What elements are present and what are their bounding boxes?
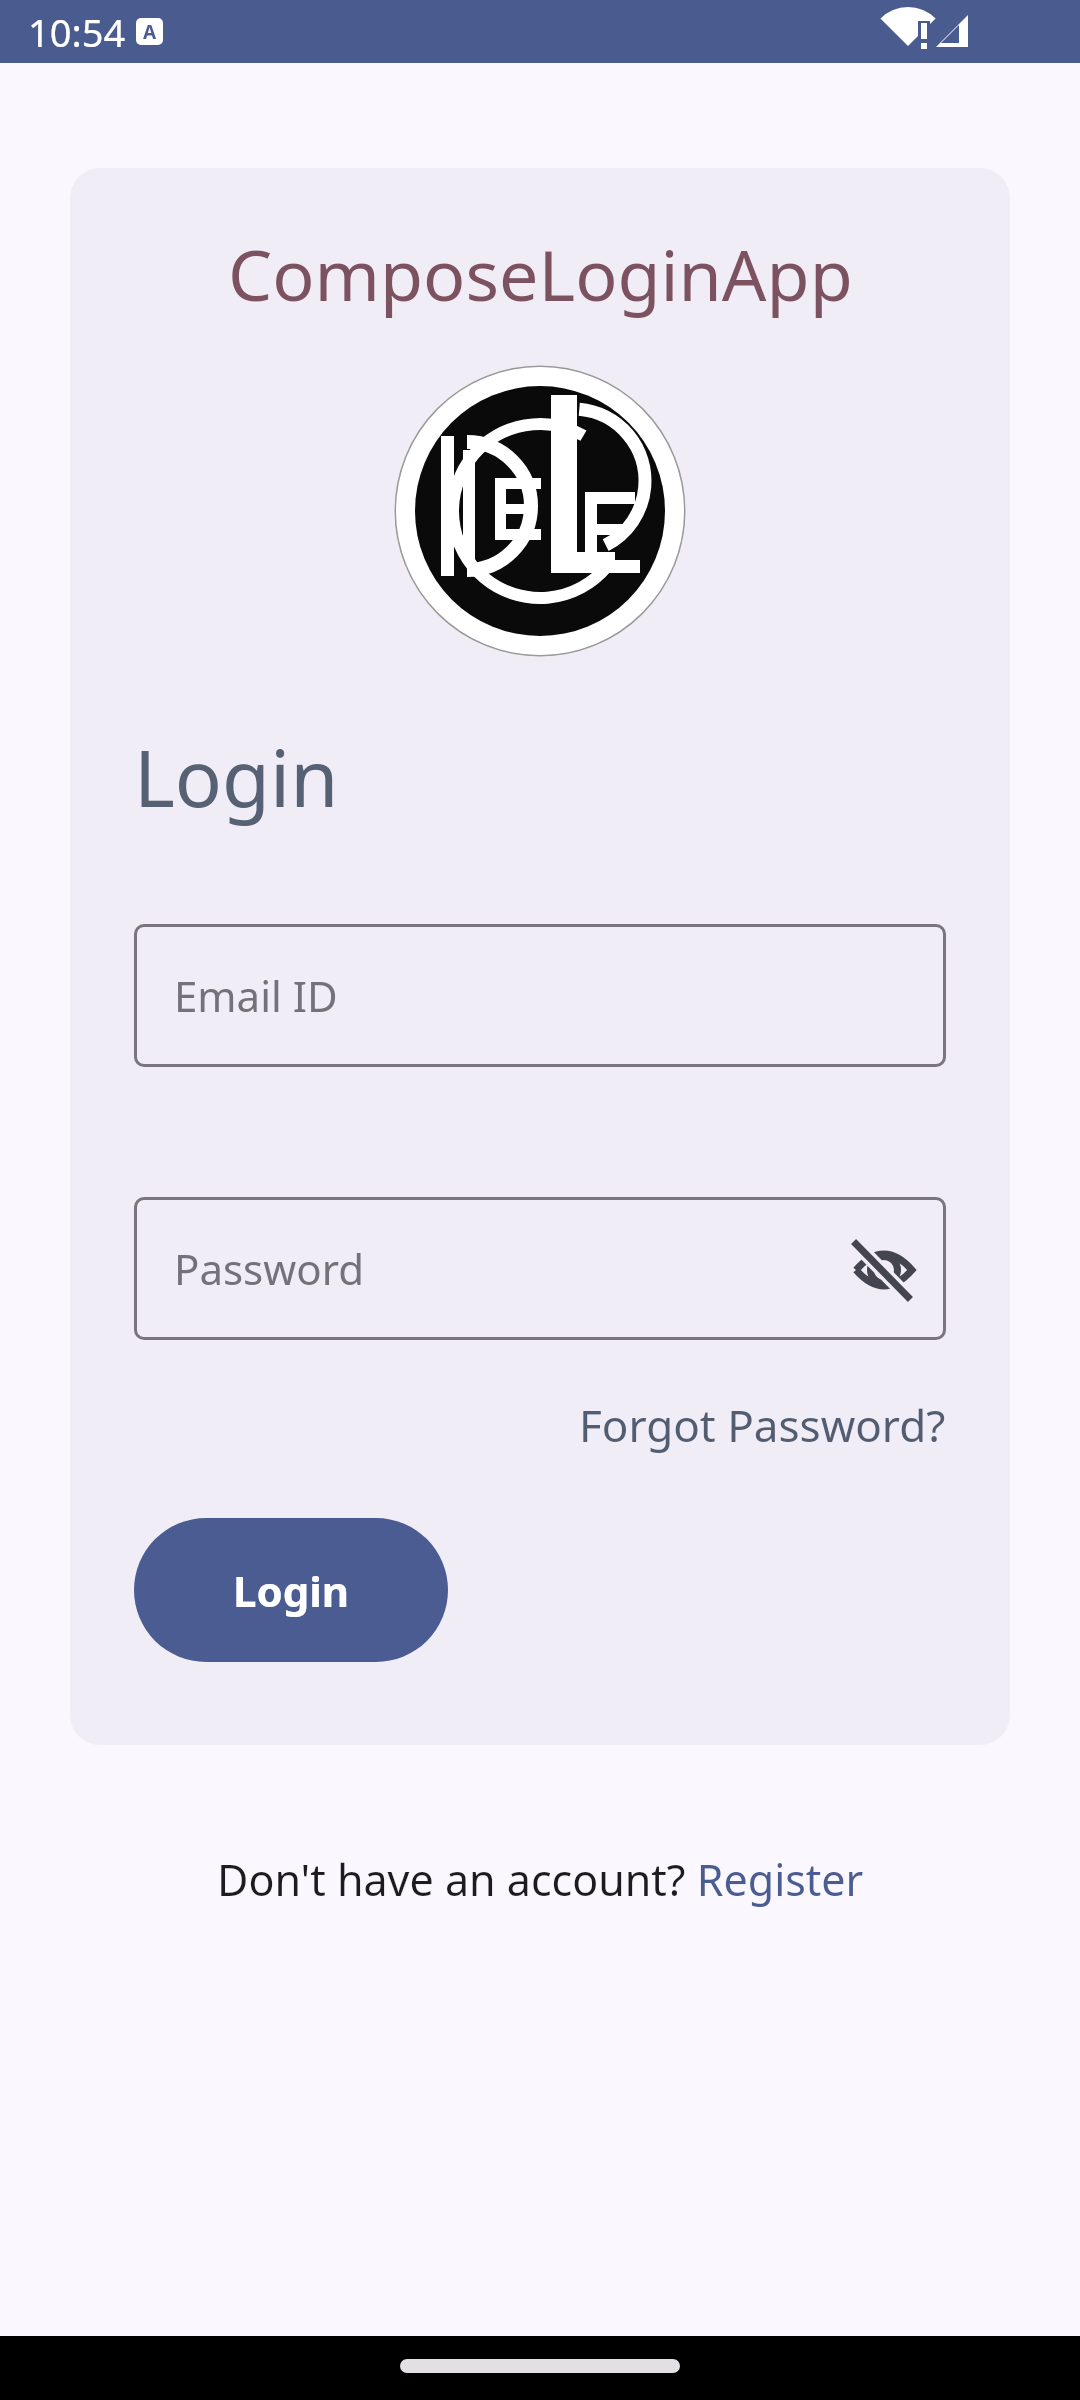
staticText: Login	[134, 724, 339, 830]
button[interactable]: Forgot Password?	[579, 1395, 946, 1455]
staticText: A	[143, 19, 157, 45]
button[interactable]: Password	[134, 1197, 946, 1340]
button[interactable]: Login	[134, 1518, 448, 1662]
staticText: 10:54	[28, 6, 126, 58]
button[interactable]: Don't have an account? Register	[217, 1850, 864, 1909]
staticText: Email ID	[174, 967, 338, 1024]
button[interactable]	[852, 1237, 916, 1301]
staticText: Login	[233, 1562, 350, 1619]
staticText: Password	[174, 1240, 364, 1297]
staticText: ComposeLoginApp	[228, 226, 853, 321]
button[interactable]: Email ID	[134, 924, 946, 1067]
